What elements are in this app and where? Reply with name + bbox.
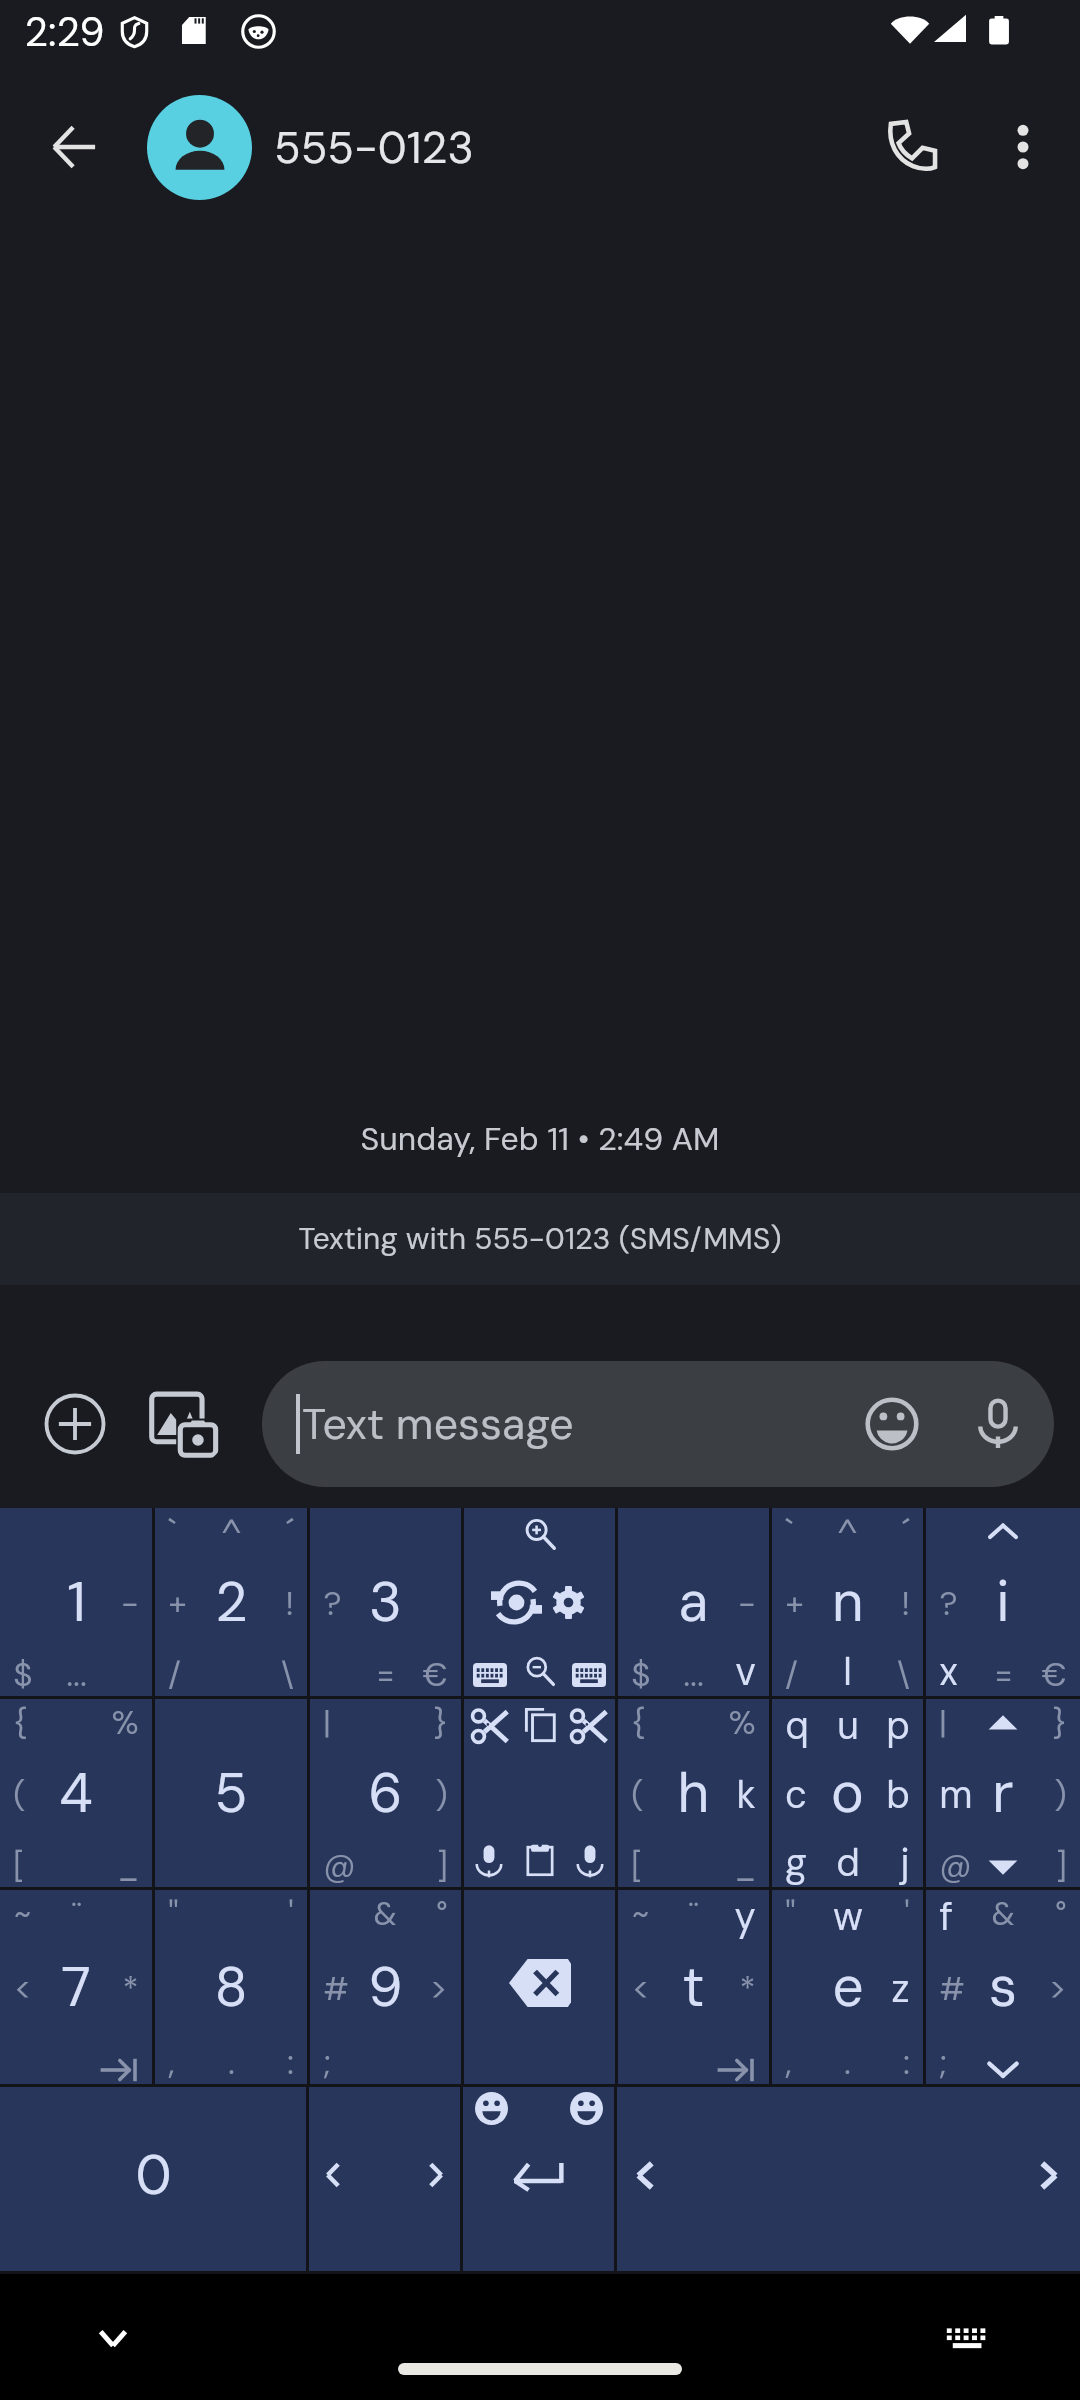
staticText: . <box>228 2041 235 2084</box>
button[interactable]: { <box>618 1699 769 1887</box>
button[interactable]: ? <box>310 1508 461 1696</box>
staticText: l <box>843 1647 852 1696</box>
staticText: y <box>734 1892 756 1941</box>
staticText: - <box>121 1582 139 1625</box>
staticText: { <box>631 1701 646 1744</box>
button[interactable]: Switch keyboard <box>934 2306 998 2370</box>
staticText: 2:29 <box>24 6 105 58</box>
staticText: ` <box>168 1510 176 1553</box>
button[interactable]: ~ <box>618 1890 769 2084</box>
staticText: q <box>785 1701 809 1750</box>
staticText: % <box>111 1701 139 1744</box>
staticText: ) <box>1054 1773 1067 1816</box>
button[interactable]: ? <box>926 1508 1080 1696</box>
staticText: ( <box>13 1773 26 1816</box>
staticText: \ <box>281 1653 294 1696</box>
staticText: > <box>429 1967 448 2010</box>
staticText: < <box>13 1967 32 2010</box>
staticText: & <box>991 1892 1016 1935</box>
button[interactable]: ~ <box>0 1890 152 2084</box>
staticText: ] <box>437 1844 448 1887</box>
button[interactable]: & <box>310 1890 461 2084</box>
staticText: i <box>996 1566 1010 1638</box>
staticText: h <box>677 1757 710 1829</box>
staticText: # <box>939 1967 965 2010</box>
staticText: ' <box>288 1892 294 1935</box>
staticText: [ <box>13 1844 24 1887</box>
staticText: > <box>1048 1967 1067 2010</box>
button[interactable]: | <box>310 1699 461 1887</box>
button[interactable]: Add attachment <box>30 1379 120 1469</box>
button[interactable]: - <box>0 1508 152 1696</box>
button[interactable] <box>464 1699 615 1887</box>
staticText: ? <box>323 1582 342 1625</box>
staticText: ´ <box>902 1510 910 1553</box>
button[interactable]: ` <box>155 1508 307 1696</box>
staticText: ~ <box>13 1892 32 1935</box>
staticText: , <box>168 2041 175 2084</box>
button[interactable] <box>617 2087 1080 2271</box>
staticText: 3 <box>369 1566 402 1638</box>
staticText: * <box>122 1967 139 2010</box>
staticText: s <box>989 1951 1017 2023</box>
staticText: & <box>373 1892 398 1935</box>
staticText: 9 <box>368 1951 403 2023</box>
button[interactable]: f <box>926 1890 1080 2084</box>
staticText: ; <box>323 2041 331 2084</box>
button[interactable]: Call <box>857 92 967 202</box>
button[interactable]: Contact avatar <box>147 95 252 200</box>
staticText: a <box>678 1566 709 1638</box>
staticText: k <box>736 1770 756 1819</box>
staticText: ~ <box>631 1892 650 1935</box>
staticText: 5 <box>214 1757 248 1829</box>
button[interactable]: Gallery <box>138 1379 228 1469</box>
button[interactable]: More options <box>975 99 1071 195</box>
staticText: % <box>728 1701 756 1744</box>
staticText: / <box>785 1653 798 1696</box>
staticText: ? <box>939 1582 958 1625</box>
staticText: ° <box>1055 1892 1067 1935</box>
button[interactable]: { <box>0 1699 152 1887</box>
button[interactable] <box>464 1508 615 1696</box>
staticText: ! <box>285 1582 294 1625</box>
staticText: ( <box>631 1773 644 1816</box>
staticText: 2 <box>215 1566 248 1638</box>
staticText: * <box>739 1967 756 2010</box>
button[interactable]: Text message <box>262 1361 1054 1487</box>
button[interactable]: ` <box>772 1508 923 1696</box>
staticText: g <box>785 1838 807 1887</box>
staticText: . <box>844 2041 851 2084</box>
staticText: = <box>994 1653 1013 1696</box>
staticText: ^ <box>221 1510 242 1553</box>
staticText: [ <box>631 1844 642 1887</box>
button[interactable]: Back <box>26 99 122 195</box>
button[interactable]: " <box>155 1890 307 2084</box>
staticText: ) <box>435 1773 448 1816</box>
staticText: @ <box>323 1844 356 1887</box>
staticText: ` <box>785 1510 793 1553</box>
button[interactable]: | <box>926 1699 1080 1887</box>
staticText: 7 <box>61 1951 91 2023</box>
staticText: ^ <box>837 1510 858 1553</box>
staticText: ; <box>939 2041 947 2084</box>
button[interactable]: " <box>772 1890 923 2084</box>
staticText: 0 <box>135 2139 172 2211</box>
button[interactable]: - <box>618 1508 769 1696</box>
button[interactable] <box>463 2087 614 2271</box>
staticText: $ <box>13 1653 33 1696</box>
button[interactable]: 0 <box>0 2087 306 2271</box>
staticText: ... <box>683 1653 704 1696</box>
button[interactable] <box>309 2087 460 2271</box>
button[interactable]: q <box>772 1699 923 1887</box>
staticText: 8 <box>214 1951 248 2023</box>
button[interactable]: Voice input <box>954 1380 1042 1468</box>
button[interactable]: Hide keyboard <box>81 2306 145 2370</box>
button[interactable] <box>464 1890 615 2084</box>
staticText: c <box>785 1770 807 1819</box>
staticText: ¨ <box>689 1892 698 1935</box>
button[interactable]: Emoji <box>848 1380 936 1468</box>
staticText: d <box>836 1838 860 1887</box>
button[interactable]: 5 <box>155 1699 307 1887</box>
staticText: Sunday, Feb 11 • 2:49 AM <box>0 1118 1080 1160</box>
staticText: { <box>13 1701 28 1744</box>
